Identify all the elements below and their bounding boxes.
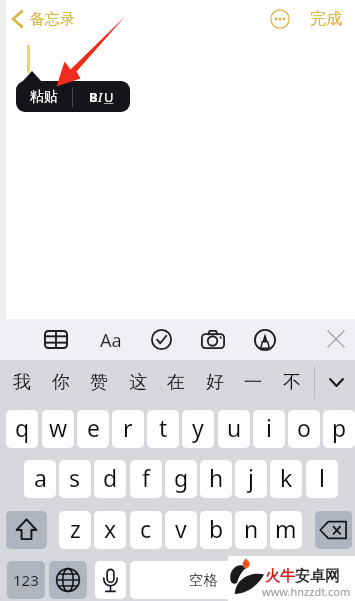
staticText: 在 [167, 371, 185, 394]
staticText: d [103, 462, 118, 493]
staticText: Aa [100, 328, 122, 352]
staticText: B [89, 88, 98, 106]
button[interactable]: x [94, 511, 126, 549]
staticText: t [159, 412, 168, 443]
button[interactable]: 这 [118, 360, 157, 405]
staticText: w [49, 412, 68, 443]
button[interactable]: Close keyboard [328, 331, 344, 347]
button[interactable]: Backspace [315, 511, 352, 549]
staticText: j [248, 462, 254, 493]
button[interactable]: e [77, 410, 109, 448]
button[interactable]: 好 [195, 360, 234, 405]
button[interactable]: Aa [97, 328, 124, 352]
staticText: 这 [129, 371, 147, 394]
button[interactable]: a [24, 460, 56, 498]
button[interactable]: More options [268, 7, 292, 31]
staticText: 完成 [310, 9, 342, 29]
staticText: 你 [52, 371, 70, 394]
button[interactable]: Change keyboard [49, 561, 87, 599]
staticText: o [297, 412, 311, 443]
button[interactable]: b [200, 511, 232, 549]
staticText: x [104, 513, 117, 544]
button[interactable]: Shift [6, 511, 47, 549]
staticText: z [70, 513, 81, 544]
button[interactable]: q [6, 410, 38, 448]
button[interactable]: Voice input [95, 561, 126, 599]
staticText: g [174, 462, 189, 493]
staticText: 安卓网 [295, 567, 340, 586]
staticText: n [244, 513, 259, 544]
button[interactable]: p [323, 410, 355, 448]
staticText: I [98, 88, 103, 106]
button[interactable]: 在 [156, 360, 195, 405]
staticText: 换行 [300, 571, 329, 589]
button[interactable]: 你 [41, 360, 80, 405]
staticText: 一 [244, 371, 262, 394]
button[interactable]: u [218, 410, 250, 448]
staticText: 备忘录 [30, 10, 75, 29]
staticText: 我 [13, 371, 31, 394]
button[interactable]: Checklist [151, 329, 172, 350]
button[interactable]: j [235, 460, 267, 498]
button[interactable]: n [235, 511, 267, 549]
button[interactable]: w [42, 410, 74, 448]
button[interactable]: Camera [201, 330, 225, 349]
staticText: p [332, 412, 347, 443]
button[interactable]: z [59, 511, 91, 549]
staticText: r [123, 412, 133, 443]
staticText: s [69, 462, 81, 493]
button[interactable]: 一 [233, 360, 272, 405]
button[interactable]: l [306, 460, 338, 498]
button[interactable]: 空格 [130, 561, 276, 599]
button[interactable]: B [73, 81, 130, 112]
button[interactable]: 赞 [79, 360, 118, 405]
staticText: k [280, 462, 293, 493]
staticText: c [140, 513, 152, 544]
button[interactable]: c [130, 511, 162, 549]
button[interactable]: 不 [272, 360, 311, 405]
button[interactable]: More candidates [318, 360, 355, 405]
button[interactable]: 完成 [310, 9, 342, 29]
staticText: U [104, 88, 114, 106]
staticText: q [15, 412, 30, 443]
button[interactable]: Markup [254, 329, 276, 351]
button[interactable]: 我 [2, 360, 41, 405]
staticText: f [142, 462, 150, 493]
button[interactable]: d [94, 460, 126, 498]
staticText: 好 [206, 371, 224, 394]
button[interactable]: g [165, 460, 197, 498]
button[interactable]: k [270, 460, 302, 498]
staticText: y [192, 412, 204, 443]
staticText: 123 [13, 570, 39, 590]
button[interactable]: h [200, 460, 232, 498]
staticText: u [227, 412, 242, 443]
button[interactable]: s [59, 460, 91, 498]
staticText: 赞 [90, 371, 108, 394]
button[interactable]: v [165, 511, 197, 549]
button[interactable]: t [147, 410, 179, 448]
staticText: i [266, 412, 272, 443]
staticText: l [319, 462, 325, 493]
button[interactable]: 备忘录 [11, 9, 75, 29]
button[interactable]: r [112, 410, 144, 448]
staticText: h [209, 462, 224, 493]
button[interactable]: i [253, 410, 285, 448]
staticText: a [34, 462, 47, 493]
staticText: e [87, 412, 100, 443]
button[interactable]: m [270, 511, 302, 549]
staticText: b [209, 513, 224, 544]
staticText: 空格 [189, 571, 218, 589]
button[interactable]: f [130, 460, 162, 498]
staticText: 火牛 [265, 567, 295, 586]
staticText: www.hnzzdt.com [262, 584, 351, 599]
staticText: m [275, 513, 297, 544]
button[interactable]: 换行 [281, 561, 348, 599]
button[interactable]: y [182, 410, 214, 448]
staticText: 不 [283, 371, 301, 394]
button[interactable]: Insert table [44, 330, 68, 349]
button[interactable]: 123 [7, 561, 45, 599]
button[interactable]: 粘贴 [16, 81, 72, 112]
staticText: 粘贴 [30, 88, 58, 106]
staticText: v [175, 513, 187, 544]
button[interactable]: o [288, 410, 320, 448]
